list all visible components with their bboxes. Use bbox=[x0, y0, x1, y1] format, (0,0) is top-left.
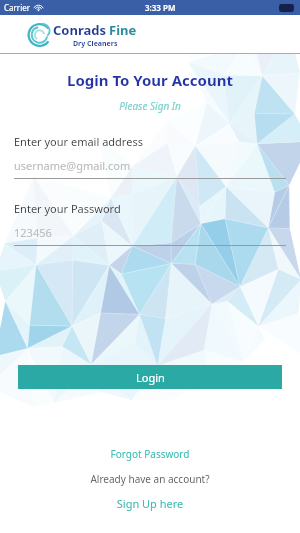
staticText: Forgot Password bbox=[0, 447, 300, 461]
staticText: 3:33 PM bbox=[145, 2, 176, 13]
staticText: username@gmail.com bbox=[14, 158, 131, 173]
staticText: Sign Up here bbox=[0, 496, 300, 511]
other: Battery full bbox=[279, 4, 296, 12]
staticText: Login To Your Account bbox=[0, 70, 300, 90]
staticText: Enter your email address bbox=[14, 134, 143, 149]
staticText: Already have an account? bbox=[0, 472, 300, 486]
staticText: Please Sign In bbox=[0, 99, 300, 113]
staticText: Carrier bbox=[4, 2, 31, 13]
button[interactable]: Login bbox=[18, 365, 282, 389]
staticText: Fine bbox=[109, 21, 137, 39]
button[interactable]: Enter your email address bbox=[14, 134, 286, 179]
staticText: Enter your Password bbox=[14, 201, 121, 216]
button[interactable]: Enter your Password bbox=[14, 201, 286, 246]
staticText: 123456 bbox=[14, 225, 52, 240]
other: Wi-Fi signal bbox=[34, 3, 43, 12]
staticText: Conrads bbox=[53, 21, 107, 39]
button[interactable]: Sign Up here bbox=[0, 496, 300, 511]
staticText: Dry Cleaners bbox=[73, 39, 118, 49]
staticText: Login bbox=[136, 370, 165, 385]
button[interactable]: Forgot Password bbox=[0, 447, 300, 461]
